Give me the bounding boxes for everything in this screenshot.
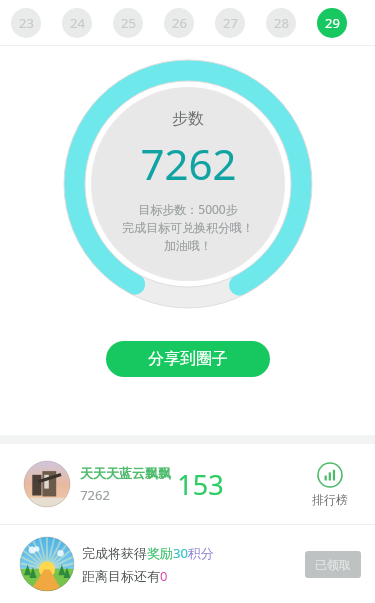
button[interactable]: 24 — [62, 8, 92, 38]
staticText: 23 — [19, 14, 34, 32]
button[interactable]: 23 — [11, 8, 41, 38]
staticText: 已领取 — [315, 557, 351, 572]
staticText: 24 — [70, 14, 85, 32]
button[interactable]: 完成将获得奖励30积分 — [0, 525, 375, 603]
staticText: 天天天蓝云飘飘 — [80, 465, 171, 481]
staticText: 27 — [223, 14, 238, 32]
staticText: 目标步数：5000步 — [138, 201, 238, 217]
button[interactable]: 28 — [266, 8, 296, 38]
button[interactable]: 排行榜 — [302, 458, 358, 511]
staticText: 分享到圈子 — [148, 349, 228, 369]
staticText: 26 — [172, 14, 187, 32]
staticText: 距离目标还有0 — [82, 567, 168, 585]
button[interactable]: 27 — [215, 8, 245, 38]
staticText: 25 — [121, 14, 136, 32]
staticText: 29 — [325, 14, 340, 32]
button[interactable]: 天天天蓝云飘飘 — [0, 444, 375, 524]
staticText: 加油哦！ — [164, 238, 212, 253]
button[interactable]: 25 — [113, 8, 143, 38]
button[interactable]: 29 — [317, 8, 347, 38]
staticText: 完成将获得奖励30积分 — [82, 544, 214, 562]
staticText: 步数 — [172, 109, 204, 129]
staticText: 28 — [274, 14, 289, 32]
staticText: 153 — [177, 466, 224, 503]
button[interactable]: 分享到圈子 — [106, 341, 270, 377]
staticText: 7262 — [80, 486, 110, 504]
staticText: 7262 — [140, 135, 237, 192]
staticText: 完成目标可兑换积分哦！ — [122, 220, 254, 235]
button[interactable]: 已领取 — [305, 551, 361, 578]
button[interactable]: 26 — [164, 8, 194, 38]
staticText: 排行榜 — [312, 492, 348, 507]
